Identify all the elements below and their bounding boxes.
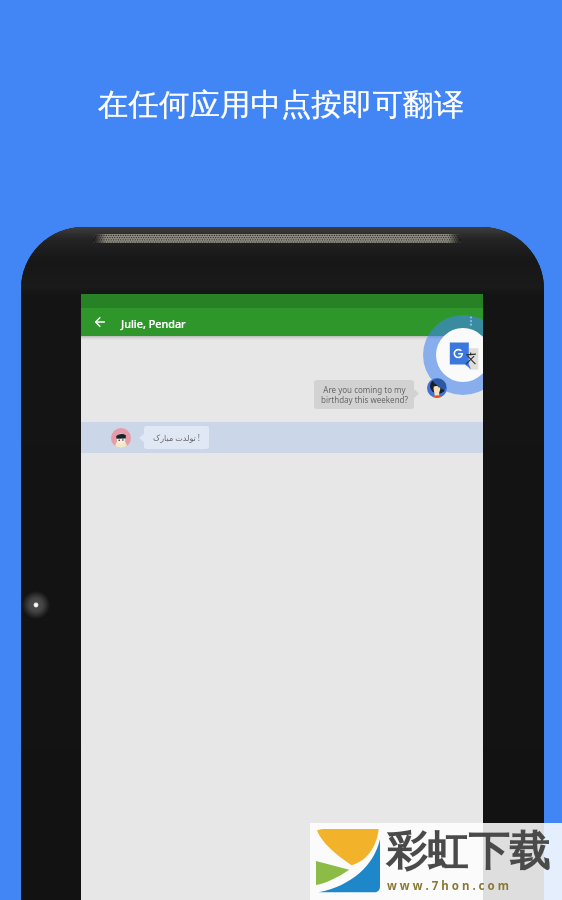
- staticText: 在任何应用中点按即可翻译: [0, 86, 562, 124]
- staticText: تولدت مبارک !: [153, 432, 200, 443]
- staticText: Julie, Pendar: [121, 316, 186, 331]
- staticText: Are you coming to my birthday this weeke…: [321, 384, 408, 406]
- staticText: 彩虹下载: [386, 826, 550, 878]
- staticText: w w w . 7 h o n . c o m: [387, 878, 509, 894]
- button[interactable]: More options: [458, 308, 483, 334]
- button[interactable]: Are you coming to my birthday this weeke…: [314, 380, 414, 409]
- button[interactable]: Back: [85, 307, 115, 337]
- button[interactable]: تولدت مبارک !: [144, 426, 209, 449]
